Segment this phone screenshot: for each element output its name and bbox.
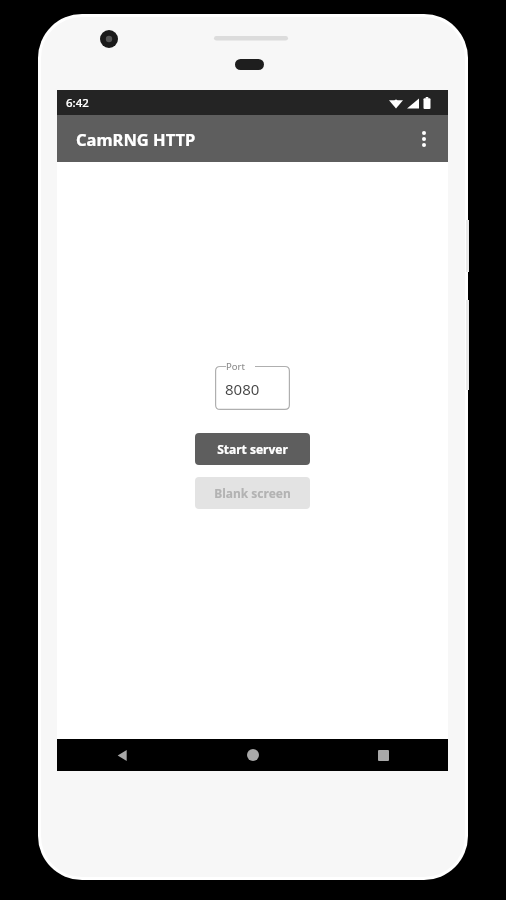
staticText: CamRNG HTTP bbox=[76, 128, 196, 150]
staticText: Port bbox=[226, 360, 245, 373]
staticText: Blank screen bbox=[214, 485, 291, 501]
button[interactable]: More options bbox=[406, 121, 442, 157]
button[interactable]: Home bbox=[188, 739, 318, 771]
staticText: 8080 bbox=[225, 379, 260, 399]
staticText: Start server bbox=[217, 441, 288, 457]
button[interactable]: Blank screen bbox=[195, 477, 310, 509]
button[interactable]: Back bbox=[57, 739, 188, 771]
staticText: 6:42 bbox=[66, 95, 89, 111]
button[interactable]: Port bbox=[215, 360, 290, 410]
button[interactable]: Recent apps bbox=[318, 739, 448, 771]
button[interactable]: Start server bbox=[195, 433, 310, 465]
